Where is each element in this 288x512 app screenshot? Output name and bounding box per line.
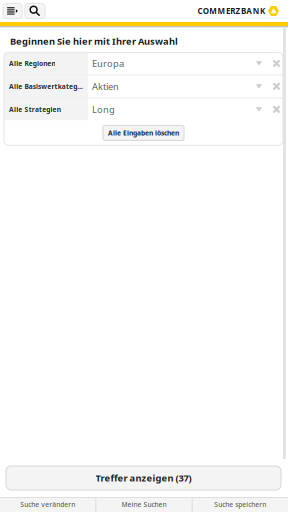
staticText: Suche verändern	[20, 500, 75, 509]
staticText: Beginnen Sie hier mit Ihrer Auswahl	[10, 35, 178, 47]
staticText: Suche speichern	[214, 500, 266, 509]
button[interactable]: Suchen	[25, 3, 45, 18]
button[interactable]: Suche verändern	[0, 497, 95, 512]
button[interactable]: Auswahl löschen	[267, 52, 283, 74]
button[interactable]: Auswahl löschen	[267, 75, 283, 97]
staticText: Alle Regionen	[9, 59, 55, 68]
staticText: Treffer anzeigen (37)	[95, 472, 191, 484]
button[interactable]: Treffer anzeigen (37)	[6, 466, 281, 490]
button[interactable]: Meine Suchen	[96, 497, 192, 512]
staticText: Europa	[92, 57, 124, 70]
staticText: Alle Eingaben löschen	[108, 128, 179, 137]
button[interactable]: Auswahl öffnen	[243, 98, 267, 120]
button[interactable]: Auswahl öffnen	[243, 75, 267, 97]
button[interactable]: Auswahl löschen	[267, 98, 283, 120]
button[interactable]: Alle Eingaben löschen	[103, 125, 184, 140]
staticText: Long	[92, 103, 115, 116]
staticText: Alle Basiswertkateg…	[9, 82, 83, 91]
staticText: COMMERZBANK	[197, 6, 265, 16]
button[interactable]: Suche speichern	[193, 497, 288, 512]
button[interactable]: Menü	[3, 3, 22, 18]
staticText: Meine Suchen	[121, 500, 166, 509]
staticText: Aktien	[92, 80, 119, 93]
staticText: Alle Strategien	[9, 105, 61, 114]
button[interactable]: Auswahl öffnen	[243, 52, 267, 74]
